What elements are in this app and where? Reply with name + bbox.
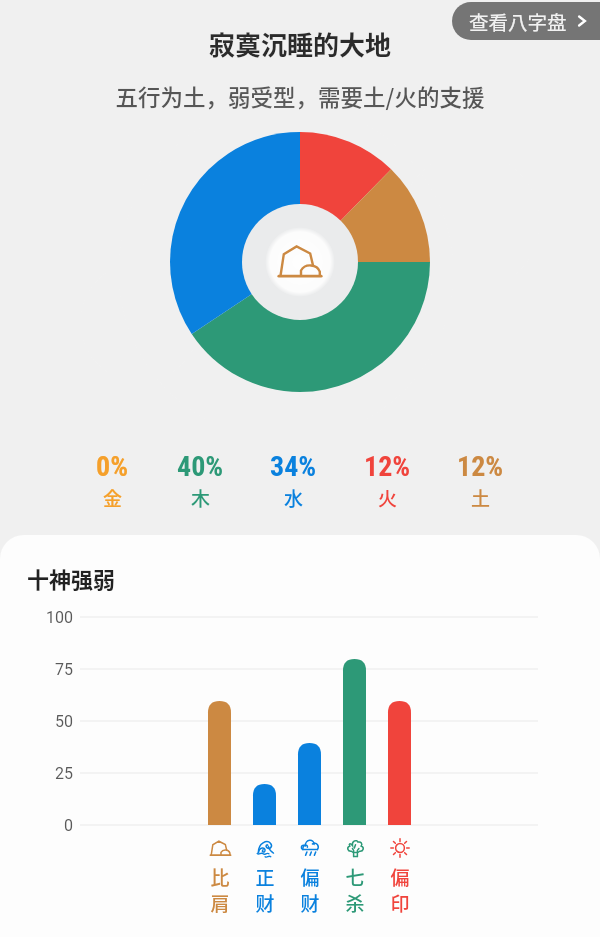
staticText: 正 财 [255,863,275,916]
button[interactable]: 偏 财 [286,838,334,916]
button[interactable]: 偏 印 [376,838,424,916]
staticText: 火 [378,484,398,512]
staticText: 0% [96,450,129,483]
staticText: 木 [191,484,211,512]
staticText: 34% [270,450,317,483]
staticText: 寂寞沉睡的大地 [0,25,600,63]
staticText: 75 [13,660,73,679]
staticText: 100 [13,608,73,627]
button[interactable]: 0% [76,450,148,512]
staticText: 0 [13,816,73,835]
staticText: 五行为土，弱受型，需要土/火的支援 [0,80,600,113]
staticText: 水 [284,484,304,512]
staticText: 40% [177,450,224,483]
button[interactable]: 七 杀 [331,838,379,916]
button[interactable]: 12% [351,450,423,512]
staticText: 土 [471,484,491,512]
button[interactable]: 正 财 [241,838,289,916]
staticText: 12% [457,450,504,483]
staticText: 12% [364,450,411,483]
staticText: 查看八字盘 [469,7,567,35]
staticText: 偏 财 [300,863,320,916]
staticText: 50 [13,712,73,731]
button[interactable]: 34% [257,450,329,512]
staticText: 十神强弱 [27,562,116,594]
staticText: 七 杀 [345,863,365,916]
button[interactable]: 查看八字盘 [452,2,600,40]
staticText: 金 [103,484,123,512]
button[interactable]: 12% [444,450,516,512]
button[interactable]: 40% [164,450,236,512]
staticText: 偏 印 [390,863,410,916]
staticText: 25 [13,764,73,783]
staticText: 比 肩 [210,863,230,916]
button[interactable]: 比 肩 [196,838,244,916]
